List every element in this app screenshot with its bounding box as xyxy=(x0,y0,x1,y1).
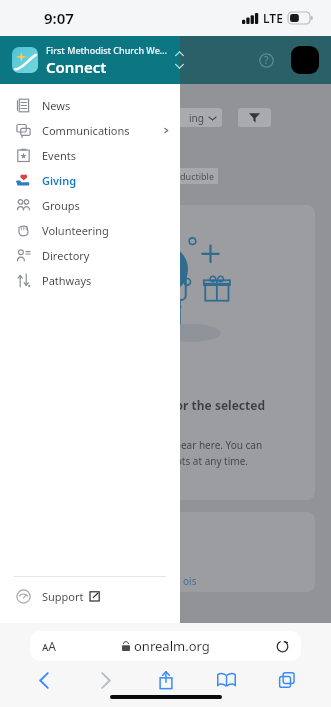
button[interactable]: Back xyxy=(27,667,61,693)
staticText: First Methodist Church We… xyxy=(46,44,168,56)
staticText: y for the selected xyxy=(161,397,265,413)
button[interactable]: Tabs xyxy=(270,667,304,693)
button[interactable]: ᴀA xyxy=(30,631,301,661)
staticText: Support xyxy=(42,589,84,604)
staticText: Pathways xyxy=(42,273,92,288)
other: App icon xyxy=(12,47,38,73)
button[interactable]: Share xyxy=(149,667,183,693)
button[interactable]: Filter xyxy=(238,108,271,127)
button[interactable]: Reload xyxy=(273,637,291,655)
button[interactable]: Support xyxy=(0,577,180,615)
staticText: eceipts at any time. xyxy=(157,454,248,468)
staticText: ᴀA xyxy=(42,638,56,654)
staticText: Connect xyxy=(46,57,107,77)
staticText: ? xyxy=(264,53,269,67)
staticText: News xyxy=(42,98,71,113)
staticText: ing xyxy=(189,111,204,125)
button[interactable]: ing xyxy=(160,108,222,127)
button[interactable]: Groups xyxy=(0,193,180,218)
button[interactable]: Profile xyxy=(291,46,319,74)
button[interactable]: Switch organization xyxy=(172,45,186,75)
button[interactable]: Forward xyxy=(88,667,122,693)
staticText: Events xyxy=(42,148,76,163)
button[interactable]: Bookmarks xyxy=(209,667,243,693)
button[interactable]: Volunteering xyxy=(0,218,180,243)
staticText: Directory xyxy=(42,248,90,263)
button[interactable]: News xyxy=(0,93,180,118)
button[interactable]: Help xyxy=(253,47,279,73)
staticText: Giving xyxy=(42,173,77,188)
staticText: LTE xyxy=(263,10,283,26)
button[interactable]: Giving xyxy=(0,168,180,193)
staticText: ois xyxy=(183,574,197,588)
button[interactable]: Pathways xyxy=(0,268,180,293)
staticText: Volunteering xyxy=(42,223,109,238)
button[interactable]: Communications xyxy=(0,118,180,143)
staticText: eductible xyxy=(175,170,214,182)
staticText: Communications xyxy=(42,123,130,138)
button[interactable]: Events xyxy=(0,143,180,168)
staticText: onrealm.org xyxy=(134,637,210,655)
staticText: appear here. You can xyxy=(163,438,263,452)
staticText: 9:07 xyxy=(44,8,74,28)
button[interactable]: Directory xyxy=(0,243,180,268)
staticText: Groups xyxy=(42,198,80,213)
